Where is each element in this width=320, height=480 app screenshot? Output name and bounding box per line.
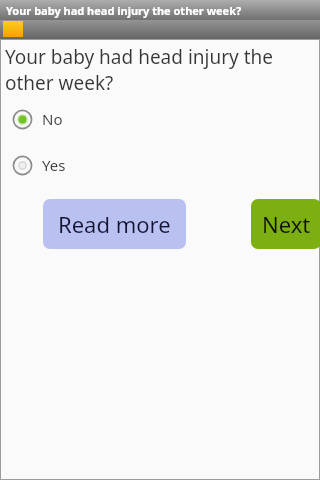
button[interactable]: Next [251,199,320,249]
button[interactable]: Read more [43,199,186,249]
button[interactable]: Yes [1,149,319,181]
staticText: Your baby had head injury the other week… [6,3,242,18]
staticText: Yes [42,155,66,175]
staticText: No [42,109,63,129]
staticText: Your baby had head injury the other week… [5,44,281,95]
staticText: Next [262,209,311,239]
button[interactable]: No [1,103,319,135]
staticText: Read more [58,209,171,239]
